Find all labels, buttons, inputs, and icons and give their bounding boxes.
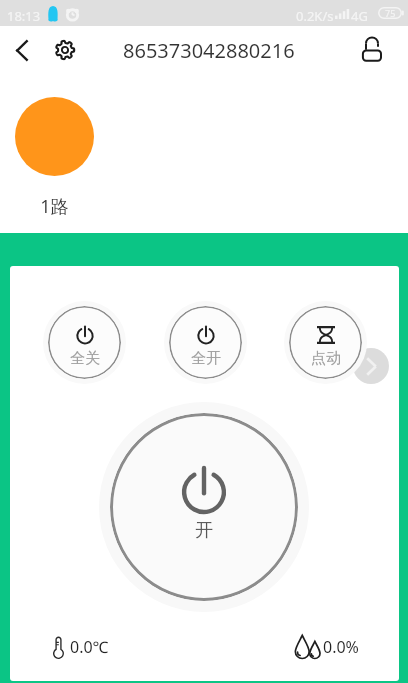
staticText: 开 [195, 519, 213, 542]
button[interactable]: 1路 [15, 97, 94, 176]
button[interactable]: Settings [46, 31, 84, 69]
staticText: 865373042880216 [123, 37, 295, 64]
staticText: 18:13 [7, 7, 41, 25]
button[interactable]: 全关 [48, 306, 121, 379]
staticText: 全开 [191, 349, 221, 368]
staticText: 点动 [311, 349, 341, 368]
staticText: 0.0℃ [70, 636, 109, 658]
button[interactable]: 开 [110, 413, 298, 601]
staticText: 0.0% [323, 636, 359, 658]
staticText: 75 [385, 7, 396, 19]
staticText: 0.2K/s [296, 7, 334, 25]
staticText: 1路 [15, 194, 94, 219]
staticText: 4G [351, 7, 368, 25]
staticText: 全关 [70, 349, 100, 368]
button[interactable]: Unlock [353, 31, 391, 69]
button[interactable]: 全开 [169, 306, 242, 379]
button[interactable]: Next page [353, 348, 389, 384]
button[interactable]: 点动 [289, 306, 362, 379]
button[interactable]: Back [3, 31, 41, 69]
